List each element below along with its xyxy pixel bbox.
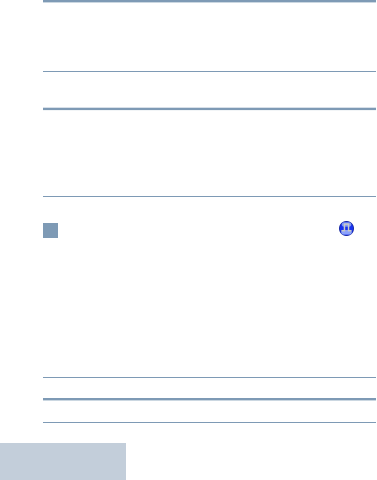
button[interactable]: Site icon — [339, 221, 354, 236]
